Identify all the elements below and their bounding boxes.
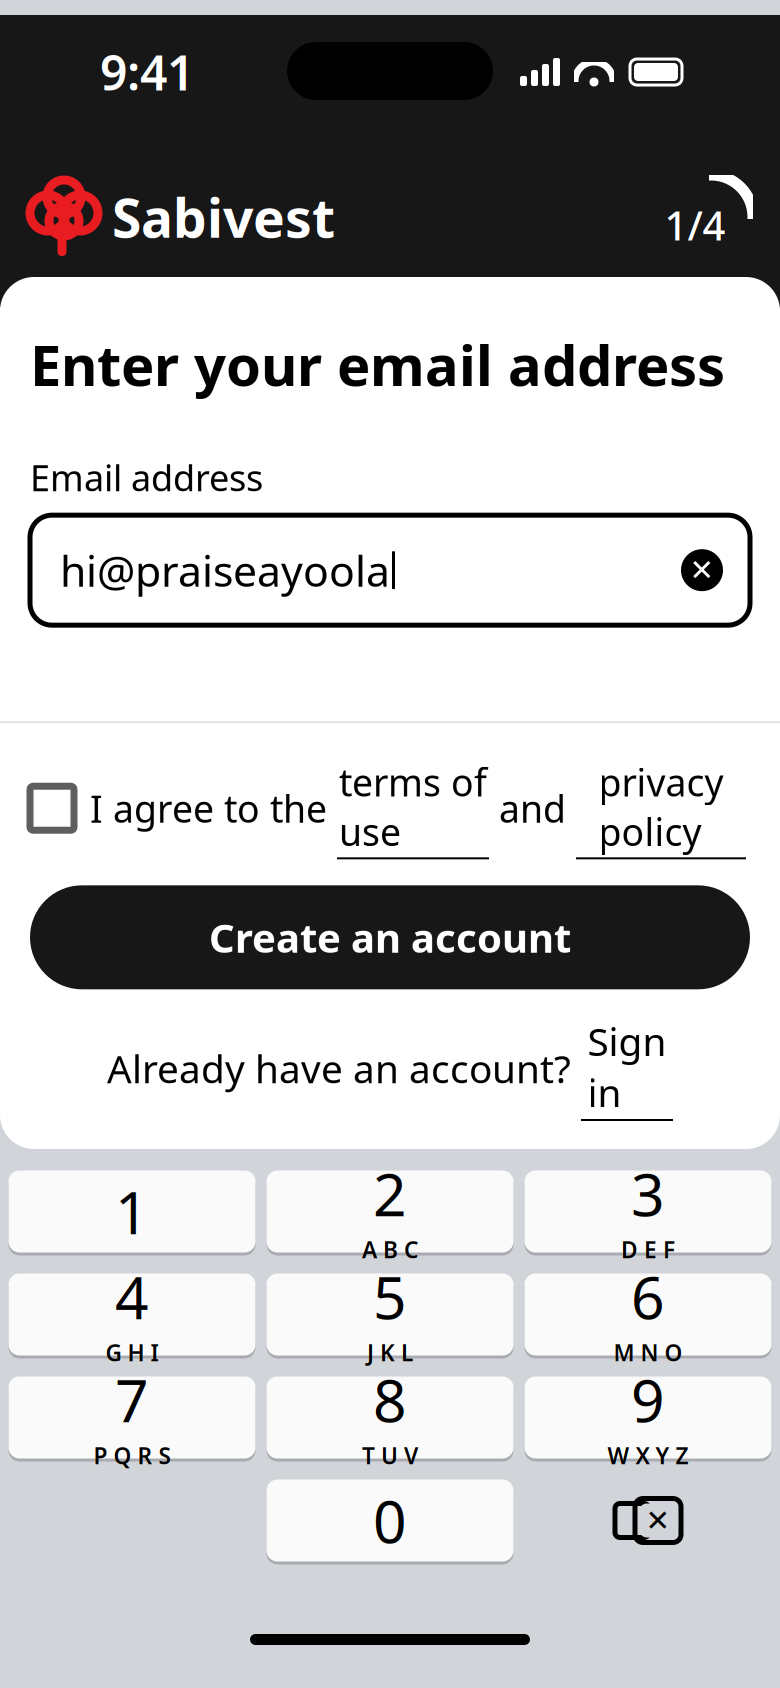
staticText: 5 bbox=[373, 1257, 407, 1335]
button[interactable]: 1 bbox=[8, 1169, 255, 1254]
staticText: 8 bbox=[373, 1360, 407, 1438]
button[interactable]: 3 bbox=[524, 1169, 771, 1254]
staticText: J K L bbox=[367, 1337, 413, 1367]
button[interactable]: 8 bbox=[266, 1375, 513, 1460]
button[interactable]: Agree to terms bbox=[0, 786, 90, 830]
button[interactable]: 4 bbox=[8, 1272, 255, 1357]
staticText: G H I bbox=[105, 1337, 158, 1367]
button[interactable]: terms of use bbox=[337, 757, 489, 859]
staticText: hi@praiseayoola bbox=[60, 542, 390, 598]
staticText: 1/4 bbox=[664, 198, 725, 251]
staticText: P Q R S bbox=[93, 1440, 170, 1470]
button[interactable]: 7 bbox=[8, 1375, 255, 1460]
button[interactable]: Sign in bbox=[581, 1015, 673, 1121]
button[interactable]: Delete bbox=[524, 1479, 771, 1561]
staticText: T U V bbox=[362, 1440, 418, 1470]
staticText: Already have an account? bbox=[107, 1042, 581, 1094]
staticText: Create an account bbox=[209, 911, 571, 964]
staticText: ✕ bbox=[689, 553, 714, 587]
button[interactable]: 2 bbox=[266, 1169, 513, 1254]
button[interactable]: 6 bbox=[524, 1272, 771, 1357]
staticText: M N O bbox=[613, 1337, 682, 1367]
staticText: W X Y Z bbox=[607, 1440, 688, 1470]
staticText: 7 bbox=[115, 1360, 149, 1438]
staticText: A B C bbox=[362, 1234, 418, 1264]
staticText: and bbox=[489, 783, 576, 833]
staticText: 1 bbox=[115, 1172, 149, 1250]
button[interactable]: 9 bbox=[524, 1375, 771, 1460]
staticText: 6 bbox=[631, 1257, 665, 1335]
button[interactable]: 5 bbox=[266, 1272, 513, 1357]
button[interactable]: 0 bbox=[266, 1478, 513, 1563]
staticText: Enter your email address bbox=[30, 327, 725, 401]
button[interactable]: Clear text bbox=[666, 534, 738, 606]
staticText: 2 bbox=[373, 1154, 407, 1232]
staticText: privacy policy bbox=[598, 757, 723, 856]
staticText: terms of use bbox=[339, 757, 487, 856]
staticText: 4 bbox=[115, 1257, 149, 1335]
button[interactable]: Create an account bbox=[30, 885, 750, 989]
staticText: Email address bbox=[30, 453, 263, 501]
staticText: 0 bbox=[373, 1481, 407, 1559]
staticText: 3 bbox=[631, 1154, 665, 1232]
staticText: ✕ bbox=[645, 1504, 670, 1537]
staticText: 9 bbox=[631, 1360, 665, 1438]
button[interactable]: privacy policy bbox=[576, 757, 746, 859]
staticText: 9:41 bbox=[100, 40, 194, 104]
staticText: Sabivest bbox=[112, 182, 335, 252]
staticText: Sign in bbox=[587, 1015, 666, 1118]
staticText: D E F bbox=[621, 1234, 675, 1264]
staticText: I agree to the bbox=[90, 783, 337, 833]
